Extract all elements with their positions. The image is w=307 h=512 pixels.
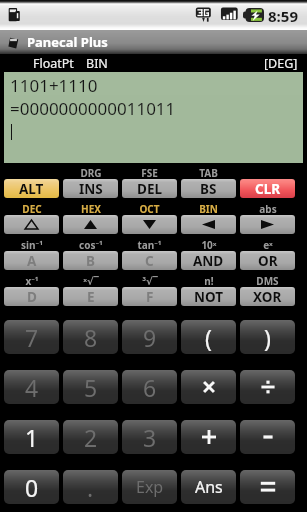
button[interactable]: D — [4, 287, 59, 306]
button[interactable]: Ans — [181, 470, 236, 504]
button[interactable]: 5 — [63, 370, 118, 404]
button[interactable]: Equals — [240, 470, 295, 504]
button[interactable]: . — [63, 470, 118, 504]
button[interactable]: 8 — [63, 320, 118, 354]
staticText: E — [87, 288, 95, 306]
staticText: 7 — [25, 322, 39, 353]
staticText: cos⁻¹ — [79, 238, 103, 251]
staticText: ) — [264, 322, 271, 353]
staticText: BIN — [199, 202, 218, 215]
button[interactable]: NOT — [181, 287, 236, 306]
staticText: tan⁻¹ — [137, 238, 162, 251]
button[interactable]: CLR — [240, 179, 295, 198]
staticText: OR — [258, 252, 278, 270]
staticText: DEC — [22, 202, 42, 215]
staticText: 1101+1110 — [10, 74, 98, 97]
staticText: F — [146, 288, 154, 306]
staticText: 3 — [143, 422, 157, 453]
button[interactable]: OR — [240, 251, 295, 270]
button[interactable]: 0 — [4, 470, 59, 504]
staticText: 1 — [25, 422, 39, 453]
staticText: TAB — [199, 166, 218, 179]
staticText: abs — [259, 202, 277, 215]
staticText: 8:59 — [268, 6, 298, 26]
button[interactable]: BS — [181, 179, 236, 198]
staticText: Panecal Plus — [27, 33, 108, 51]
button[interactable]: 2 — [63, 420, 118, 454]
staticText: 6 — [143, 372, 157, 403]
button[interactable]: E — [63, 287, 118, 306]
staticText: sin⁻¹ — [21, 238, 43, 251]
button[interactable]: DEL — [122, 179, 177, 198]
staticText: 5 — [84, 372, 98, 403]
staticText: [DEG] — [264, 55, 298, 72]
button[interactable]: FloatPt — [31, 55, 76, 72]
staticText: 8 — [84, 322, 98, 353]
button[interactable]: 9 — [122, 320, 177, 354]
staticText: ALT — [19, 180, 44, 198]
staticText: eˣ — [263, 238, 273, 251]
button[interactable]: XOR — [240, 287, 295, 306]
button[interactable]: A — [4, 251, 59, 270]
button[interactable]: F — [122, 287, 177, 306]
staticText: BS — [200, 180, 217, 198]
staticText: . — [87, 472, 94, 503]
button[interactable]: Divide — [240, 370, 295, 404]
button[interactable]: AND — [181, 251, 236, 270]
button[interactable]: Multiply — [181, 370, 236, 404]
button[interactable]: Down — [122, 215, 177, 234]
button[interactable]: B — [63, 251, 118, 270]
button[interactable]: INS — [63, 179, 118, 198]
button[interactable]: ALT — [4, 179, 59, 198]
staticText: x⁻¹ — [25, 274, 39, 287]
staticText: XOR — [253, 288, 282, 306]
staticText: n! — [204, 274, 214, 287]
staticText: BIN — [86, 55, 108, 72]
staticText: DMS — [256, 274, 279, 287]
staticText: A — [27, 252, 37, 270]
staticText: D — [27, 288, 37, 306]
button[interactable]: ) — [240, 320, 295, 354]
button[interactable]: BIN — [84, 55, 110, 72]
staticText: 10ˣ — [201, 238, 217, 251]
button[interactable]: Exp — [122, 470, 177, 504]
button[interactable]: Up — [63, 215, 118, 234]
staticText: C — [145, 252, 154, 270]
button[interactable]: 4 — [4, 370, 59, 404]
button[interactable]: 3 — [122, 420, 177, 454]
button[interactable]: Shift — [4, 215, 59, 234]
staticText: ³√‾ — [142, 274, 158, 287]
staticText: CLR — [255, 180, 281, 198]
button[interactable]: Right — [240, 215, 295, 234]
staticText: ( — [205, 322, 212, 353]
staticText: Exp — [136, 476, 164, 498]
staticText: DRG — [80, 166, 102, 179]
button[interactable]: 6 — [122, 370, 177, 404]
staticText: 9 — [143, 322, 157, 353]
staticText: B — [86, 252, 95, 270]
button[interactable]: Plus — [181, 420, 236, 454]
staticText: FloatPt — [33, 55, 74, 72]
staticText: =0000000000011011 — [10, 97, 176, 120]
staticText: 2 — [84, 422, 98, 453]
staticText: AND — [193, 252, 224, 270]
staticText: INS — [79, 180, 103, 198]
button[interactable]: 1 — [4, 420, 59, 454]
button[interactable]: Left — [181, 215, 236, 234]
button[interactable]: Minus — [240, 420, 295, 454]
button[interactable]: C — [122, 251, 177, 270]
staticText: NOT — [194, 288, 224, 306]
staticText: 4 — [25, 372, 39, 403]
button[interactable]: 7 — [4, 320, 59, 354]
staticText: DEL — [137, 180, 162, 198]
staticText: OCT — [139, 202, 160, 215]
staticText: HEX — [81, 202, 101, 215]
staticText: Ans — [195, 476, 223, 498]
staticText: FSE — [141, 166, 158, 179]
staticText: ˣ√‾ — [83, 274, 99, 287]
button[interactable]: ( — [181, 320, 236, 354]
staticText: 0 — [25, 472, 39, 503]
